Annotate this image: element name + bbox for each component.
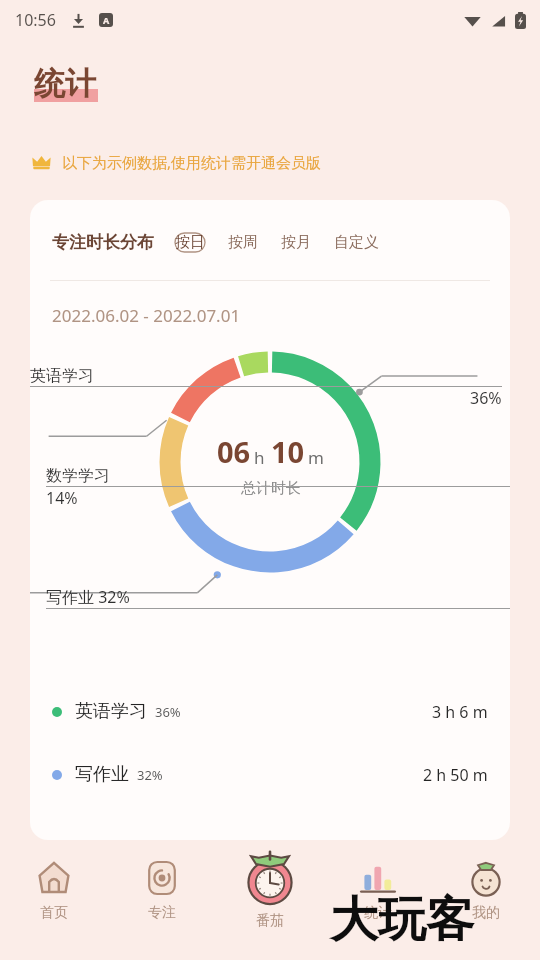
staticText: 10 <box>271 432 305 471</box>
staticText: 14% <box>46 487 78 509</box>
staticText: 36% <box>470 387 502 409</box>
button[interactable]: 英语学习 <box>30 700 510 723</box>
staticText: 2022.06.02 - 2022.07.01 <box>52 304 241 327</box>
staticText: 2 h 50 m <box>423 764 488 786</box>
staticText: 英语学习 <box>75 700 147 723</box>
staticText: 写作业 32% <box>46 586 130 608</box>
button[interactable]: 按周 <box>219 228 267 257</box>
staticText: 写作业 <box>75 763 129 786</box>
staticText: m <box>308 446 324 469</box>
staticText: 我的 <box>472 904 500 922</box>
staticText: 番茄 <box>256 912 284 930</box>
button[interactable]: 番茄 <box>216 848 324 960</box>
staticText: 10:56 <box>15 9 56 31</box>
staticText: 32% <box>137 766 163 784</box>
staticText: A <box>103 14 110 26</box>
staticText: 数学学习 <box>46 466 110 486</box>
staticText: 总计时长 <box>241 479 301 498</box>
button[interactable]: 我的 <box>432 848 540 960</box>
staticText: 自定义 <box>334 233 379 252</box>
staticText: 首页 <box>40 904 68 922</box>
button[interactable]: 写作业 <box>30 763 510 786</box>
staticText: 按月 <box>281 233 311 252</box>
other: 统计 <box>358 858 398 898</box>
staticText: 3 h 6 m <box>432 701 488 723</box>
staticText: 按日 <box>175 233 205 252</box>
other: 我的 <box>466 858 506 898</box>
button[interactable]: 按月 <box>272 228 320 257</box>
staticText: 专注 <box>148 904 176 922</box>
staticText: 36% <box>155 703 181 721</box>
staticText: 大玩客 <box>330 890 474 950</box>
staticText: 英语学习 <box>30 366 94 386</box>
staticText: 统计 <box>34 64 96 103</box>
staticText: 以下为示例数据,使用统计需开通会员版 <box>62 152 322 172</box>
staticText: h <box>254 446 265 469</box>
other: 番茄 <box>242 850 298 906</box>
button[interactable]: 统计 <box>324 848 432 960</box>
button[interactable]: 按日 <box>166 228 214 257</box>
other: 专注 <box>142 858 182 898</box>
staticText: 按周 <box>228 233 258 252</box>
button[interactable]: 自定义 <box>325 228 388 257</box>
other: 首页 <box>34 858 74 898</box>
button[interactable]: 专注 <box>108 848 216 960</box>
staticText: 06 <box>217 432 251 471</box>
staticText: 统计 <box>364 904 392 922</box>
staticText: 专注时长分布 <box>52 232 154 253</box>
button[interactable]: 首页 <box>0 848 108 960</box>
